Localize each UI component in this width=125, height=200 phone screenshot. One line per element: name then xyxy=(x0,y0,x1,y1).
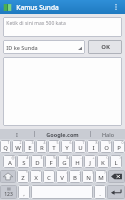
staticText: W xyxy=(15,144,21,152)
staticText: A xyxy=(8,159,12,167)
staticText: + xyxy=(92,155,95,160)
staticText: Ketik di sini max 500 kata xyxy=(6,20,66,27)
staticText: 2 xyxy=(19,140,22,145)
button[interactable]: , xyxy=(18,185,30,199)
staticText: G xyxy=(62,159,67,167)
staticText: : xyxy=(66,170,67,175)
button[interactable]: ID ke Sunda xyxy=(3,40,85,54)
staticText: Y xyxy=(65,144,69,152)
button[interactable]: 4 xyxy=(36,140,47,153)
staticText: , xyxy=(23,190,25,198)
staticText: O xyxy=(104,144,109,152)
staticText: " xyxy=(39,170,41,175)
staticText: 9 xyxy=(108,140,111,145)
button[interactable]: 7 xyxy=(74,140,86,153)
staticText: Kamus Sunda xyxy=(16,3,59,12)
staticText: # xyxy=(26,155,29,160)
button[interactable]: 3 xyxy=(24,140,35,153)
button[interactable]: ? xyxy=(95,170,107,183)
button[interactable]: Space xyxy=(31,185,93,199)
staticText: I xyxy=(16,131,18,138)
button[interactable]: 9 xyxy=(100,140,112,153)
staticText: & xyxy=(66,155,69,160)
staticText: ; xyxy=(79,170,80,175)
staticText: ( xyxy=(106,155,108,160)
staticText: T xyxy=(52,144,56,152)
button[interactable]: Backspace xyxy=(108,170,125,183)
staticText: H xyxy=(75,159,80,167)
staticText: L xyxy=(114,159,118,167)
staticText: C xyxy=(47,174,51,182)
button[interactable]: I xyxy=(0,129,34,139)
button[interactable]: % xyxy=(45,155,57,168)
staticText: 5 xyxy=(56,140,59,145)
button[interactable]: # xyxy=(17,155,30,168)
button[interactable]: 6 xyxy=(61,140,73,153)
staticText: B xyxy=(73,174,77,182)
button[interactable]: ( xyxy=(97,155,109,168)
staticText: ▤ xyxy=(7,186,11,191)
staticText: Z xyxy=(21,174,25,182)
staticText: F xyxy=(49,159,53,167)
staticText: 7 xyxy=(82,140,85,145)
staticText: D xyxy=(35,159,40,167)
button[interactable]: . xyxy=(94,185,106,199)
staticText: J xyxy=(89,159,91,167)
staticText: % xyxy=(53,155,56,160)
staticText: ! xyxy=(92,170,93,175)
staticText: R xyxy=(40,144,44,152)
button[interactable]: @ xyxy=(3,155,16,168)
button[interactable]: " xyxy=(30,170,42,183)
staticText: 4 xyxy=(43,140,46,145)
staticText: ' xyxy=(53,170,54,175)
button[interactable]: : xyxy=(56,170,68,183)
button[interactable]: ; xyxy=(69,170,81,183)
staticText: 8 xyxy=(95,140,98,145)
staticText: Google.com xyxy=(46,131,79,138)
staticText: N xyxy=(86,174,91,182)
staticText: V xyxy=(60,174,64,182)
button[interactable]: 1 xyxy=(0,140,11,153)
button[interactable]: ) xyxy=(110,155,122,168)
staticText: 123 xyxy=(4,191,13,198)
button[interactable]: ! xyxy=(82,170,94,183)
staticText: 3 xyxy=(31,140,34,145)
button[interactable]: $ xyxy=(31,155,44,168)
button[interactable]: 0 xyxy=(113,140,125,153)
staticText: ) xyxy=(119,155,121,160)
staticText: OK xyxy=(101,43,110,51)
staticText: 1 xyxy=(7,140,10,145)
staticText: @ xyxy=(11,155,15,160)
button[interactable]: * xyxy=(17,170,29,183)
button[interactable]: More options xyxy=(110,1,122,13)
staticText: K xyxy=(101,159,105,167)
staticText: U xyxy=(78,144,83,152)
button[interactable]: - xyxy=(71,155,83,168)
staticText: ID ke Sunda xyxy=(6,44,38,51)
staticText: X xyxy=(34,174,38,182)
staticText: 0 xyxy=(121,140,124,145)
staticText: * xyxy=(26,170,28,175)
staticText: Q xyxy=(3,144,8,152)
button[interactable]: OK xyxy=(88,40,122,54)
button[interactable]: 2 xyxy=(12,140,23,153)
button[interactable]: & xyxy=(58,155,70,168)
button[interactable]: 5 xyxy=(48,140,60,153)
staticText: E xyxy=(28,144,32,152)
staticText: 6 xyxy=(69,140,72,145)
button[interactable]: Google.com xyxy=(35,129,90,139)
staticText: I xyxy=(92,144,95,152)
button[interactable] xyxy=(3,57,122,126)
button[interactable]: Halo xyxy=(91,129,125,139)
button[interactable]: + xyxy=(84,155,96,168)
button[interactable]: 8 xyxy=(87,140,99,153)
button[interactable]: ▤ xyxy=(0,185,17,199)
staticText: P xyxy=(117,144,121,152)
staticText: Halo xyxy=(102,131,114,138)
staticText: ? xyxy=(104,170,106,175)
button[interactable]: ' xyxy=(43,170,55,183)
button[interactable]: Shift xyxy=(0,170,16,183)
staticText: - xyxy=(80,155,82,160)
button[interactable]: Enter xyxy=(107,185,125,199)
button[interactable]: Ketik di sini max 500 kata xyxy=(3,17,122,37)
